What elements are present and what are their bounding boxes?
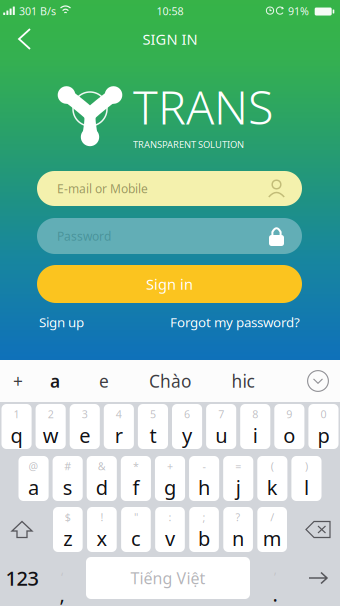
button[interactable]: ) xyxy=(291,456,321,501)
staticText: n xyxy=(232,525,244,552)
staticText: ; xyxy=(203,510,206,524)
button[interactable]: / xyxy=(257,507,287,552)
staticText: 4 xyxy=(116,407,122,421)
staticText: d xyxy=(96,474,108,501)
button[interactable]: 4 xyxy=(104,404,134,449)
button[interactable]: 5 xyxy=(138,404,168,449)
staticText: ʻ xyxy=(61,569,63,585)
staticText: ? xyxy=(236,510,241,524)
button[interactable]: @ xyxy=(18,456,49,501)
button[interactable]: Tiếng Việt xyxy=(86,557,250,599)
button[interactable]: ; xyxy=(189,507,219,552)
staticText: 91% xyxy=(288,4,309,18)
button[interactable]: a xyxy=(33,360,77,402)
staticText: , xyxy=(59,581,64,606)
staticText: f xyxy=(132,474,139,501)
staticText: 301 B/s xyxy=(19,4,56,18)
staticText: Forgot my password? xyxy=(170,313,300,331)
button[interactable]: ? xyxy=(223,507,253,552)
button[interactable]: Shift xyxy=(1,507,43,552)
button[interactable]: = xyxy=(223,456,253,501)
staticText: 9 xyxy=(286,407,292,421)
staticText: SIGN IN xyxy=(142,29,197,49)
button[interactable]: Sign in xyxy=(37,265,302,303)
staticText: * xyxy=(133,459,139,473)
button[interactable]: 8 xyxy=(240,404,270,449)
button[interactable]: 3 xyxy=(70,404,100,449)
staticText: e xyxy=(99,369,109,392)
staticText: a xyxy=(50,369,60,392)
staticText: x xyxy=(96,525,107,552)
staticText: 0 xyxy=(320,407,326,421)
staticText: ( xyxy=(271,459,274,473)
button[interactable]: - xyxy=(189,456,219,501)
button[interactable]: # xyxy=(53,456,83,501)
button[interactable]: & xyxy=(87,456,117,501)
button[interactable]: 9 xyxy=(274,404,304,449)
staticText: / xyxy=(270,510,274,524)
staticText: + xyxy=(167,459,173,473)
button[interactable]: Delete xyxy=(297,507,339,552)
staticText: l xyxy=(304,474,309,501)
staticText: o xyxy=(283,422,295,449)
staticText: m xyxy=(263,525,282,552)
staticText: q xyxy=(11,422,23,449)
button[interactable]: Sign up xyxy=(37,313,84,331)
staticText: c xyxy=(131,525,141,552)
staticText: g xyxy=(164,474,176,501)
staticText: 10:58 xyxy=(156,4,183,18)
button[interactable]: Forgot my password? xyxy=(170,313,302,331)
staticText: TRANS xyxy=(133,75,273,137)
staticText: - xyxy=(203,459,206,473)
button[interactable]: hic xyxy=(217,360,269,402)
button[interactable]: ( xyxy=(257,456,287,501)
staticText: p xyxy=(317,422,329,449)
staticText: Sign in xyxy=(146,274,193,294)
staticText: 1 xyxy=(14,407,20,421)
staticText: + xyxy=(13,369,23,392)
button[interactable]: Chào xyxy=(138,360,202,402)
staticText: z xyxy=(63,525,72,552)
button[interactable]: Hide keyboard xyxy=(296,360,340,402)
staticText: s xyxy=(63,474,73,501)
staticText: 3 xyxy=(82,407,88,421)
staticText: hic xyxy=(231,369,254,392)
staticText: a xyxy=(28,474,39,501)
staticText: 6 xyxy=(184,407,190,421)
staticText: v xyxy=(165,525,175,552)
button[interactable]: + xyxy=(0,360,36,402)
button[interactable]: 6 xyxy=(172,404,202,449)
button[interactable]: e xyxy=(82,360,126,402)
staticText: ʼ xyxy=(274,569,276,585)
staticText: h xyxy=(198,474,210,501)
button[interactable]: Return xyxy=(297,557,339,599)
button[interactable]: ! xyxy=(87,507,117,552)
staticText: b xyxy=(198,525,210,552)
staticText: : xyxy=(168,510,171,524)
button[interactable]: 1 xyxy=(1,404,32,449)
staticText: Tiếng Việt xyxy=(130,567,205,589)
button[interactable]: 0 xyxy=(308,404,338,449)
button[interactable]: " xyxy=(121,507,151,552)
staticText: E-mail or Mobile xyxy=(57,180,148,196)
staticText: u xyxy=(215,422,227,449)
staticText: 7 xyxy=(218,407,224,421)
staticText: 123 xyxy=(5,565,38,591)
button[interactable]: 7 xyxy=(206,404,236,449)
button[interactable]: 123 xyxy=(0,557,48,599)
staticText: # xyxy=(64,459,71,473)
staticText: i xyxy=(253,422,258,449)
staticText: Password xyxy=(57,228,111,244)
button[interactable]: + xyxy=(155,456,185,501)
staticText: y xyxy=(182,422,192,449)
button[interactable]: Back xyxy=(0,22,46,56)
button[interactable]: 2 xyxy=(36,404,66,449)
staticText: Sign up xyxy=(39,313,84,331)
button[interactable]: : xyxy=(155,507,185,552)
button[interactable]: $ xyxy=(53,507,83,552)
button[interactable]: * xyxy=(121,456,151,501)
staticText: e xyxy=(79,422,90,449)
staticText: j xyxy=(236,474,241,501)
